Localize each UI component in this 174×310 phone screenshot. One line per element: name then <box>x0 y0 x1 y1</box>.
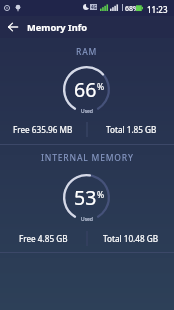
staticText: Free 635.96 MB <box>13 124 73 135</box>
staticText: % <box>97 81 105 93</box>
staticText: 4G <box>91 4 97 10</box>
staticText: Used <box>81 108 93 115</box>
staticText: Total 10.48 GB <box>103 233 159 244</box>
staticText: 53 <box>74 184 97 211</box>
staticText: 11:23 <box>147 4 168 15</box>
staticText: INTERNAL MEMORY <box>41 152 134 164</box>
staticText: 68% <box>125 4 139 14</box>
staticText: Free 4.85 GB <box>19 233 68 244</box>
staticText: Total 1.85 GB <box>106 124 157 135</box>
staticText: RAM <box>76 46 98 58</box>
staticText: 66 <box>74 76 97 103</box>
staticText: Used <box>81 216 93 223</box>
staticText: % <box>97 189 105 201</box>
button[interactable]: Back <box>0 16 25 38</box>
staticText: Memory Info <box>27 21 88 34</box>
